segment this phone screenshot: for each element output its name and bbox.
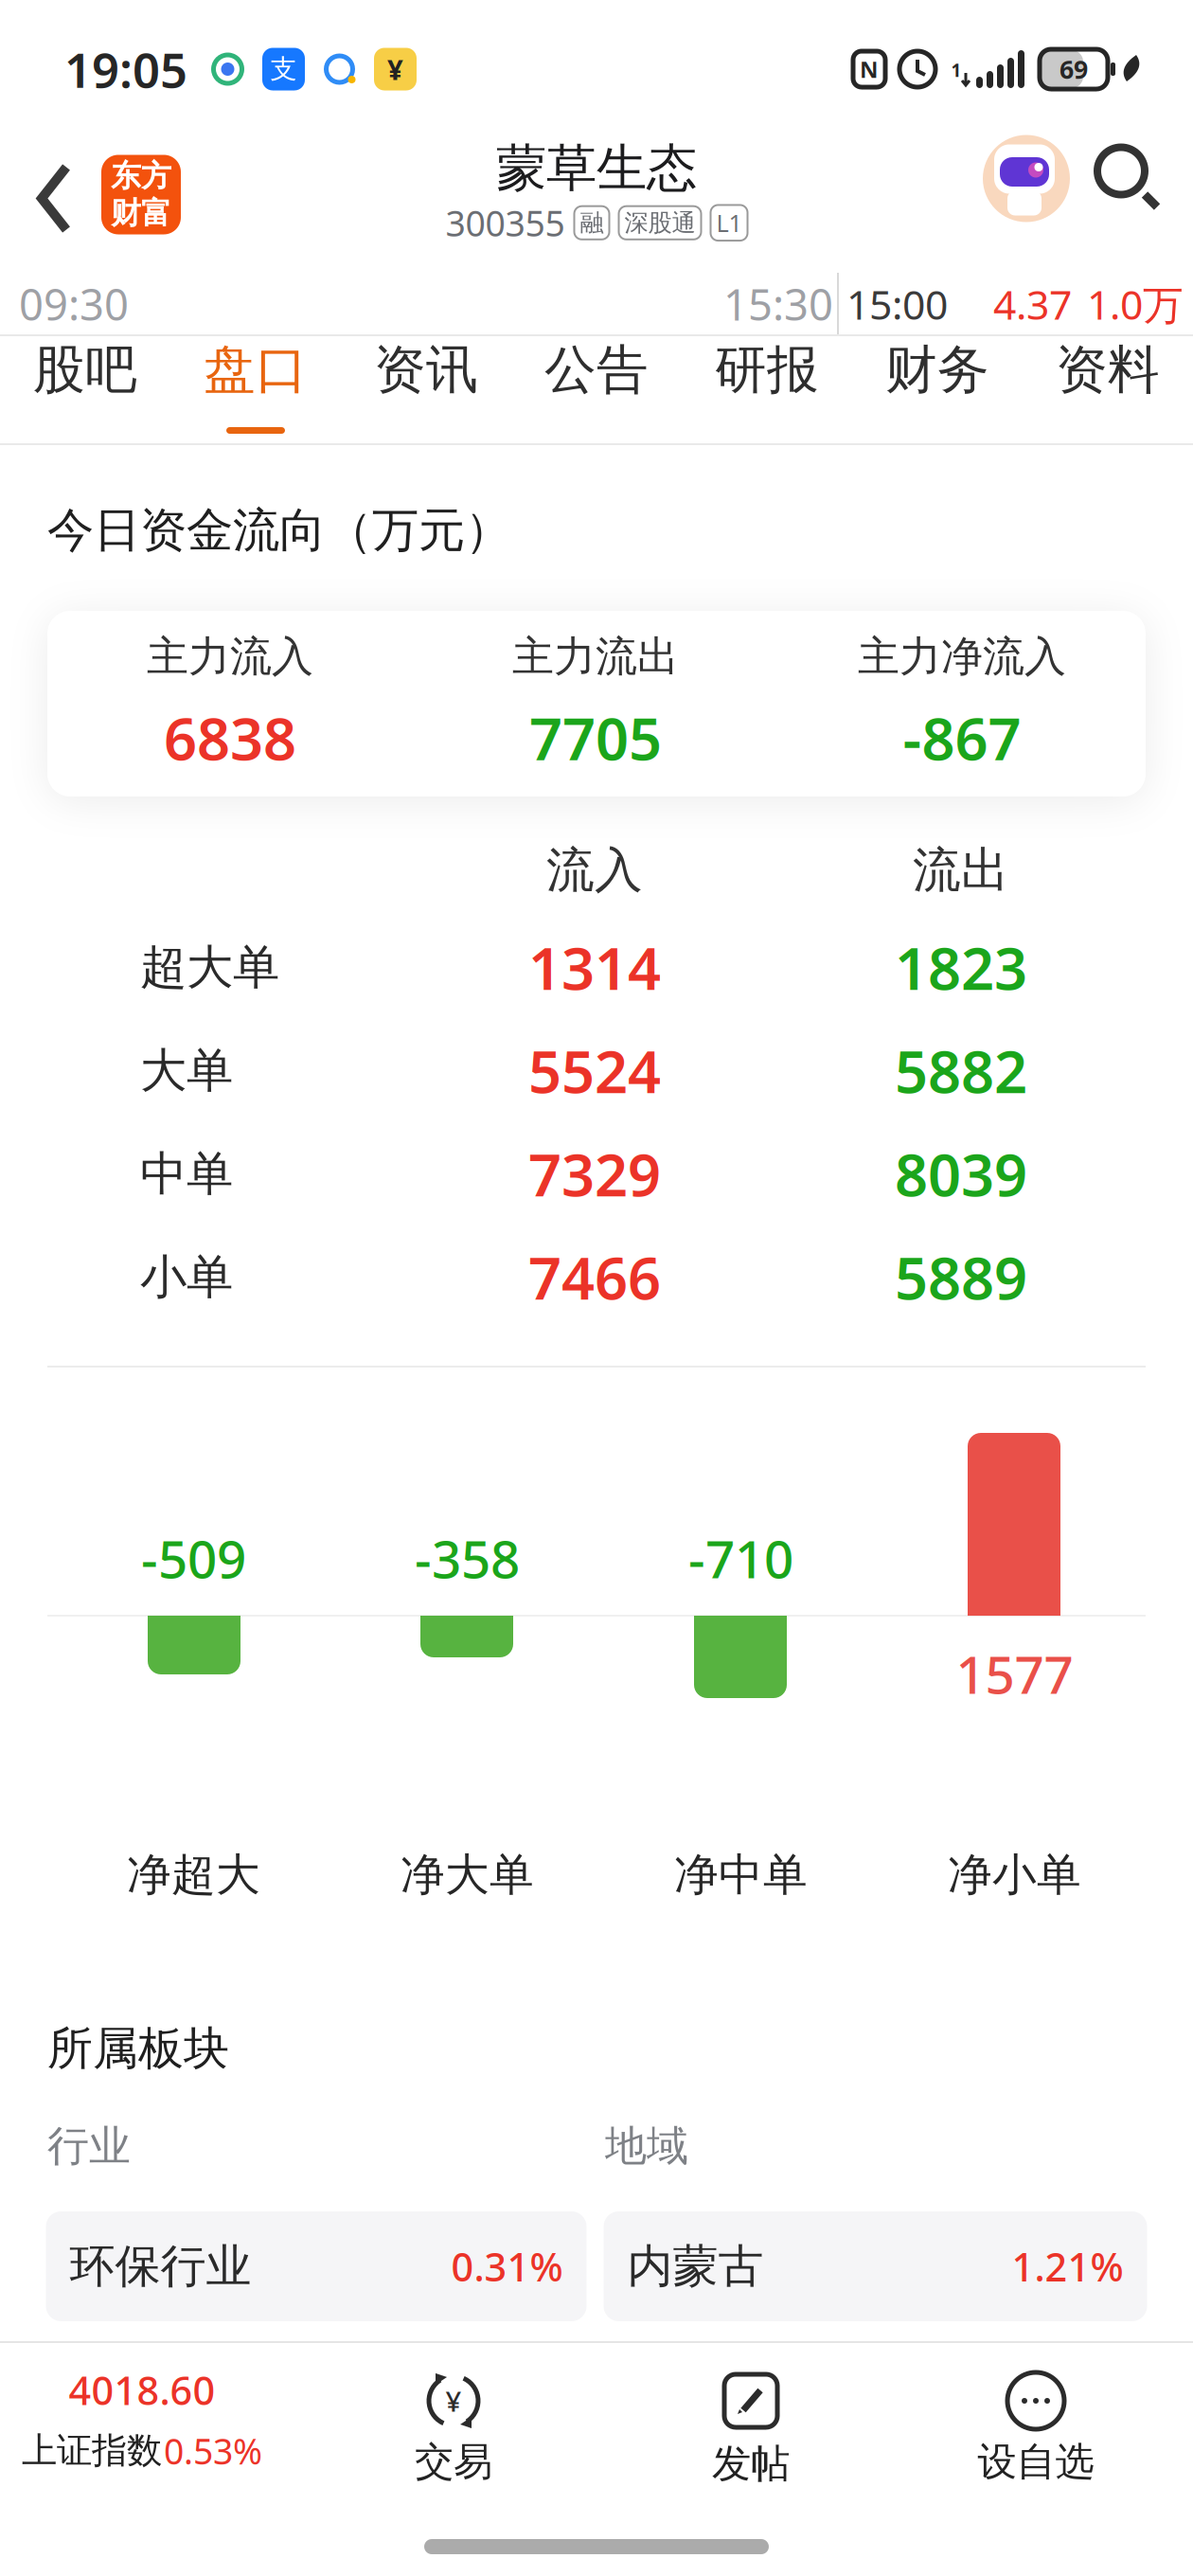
- button[interactable]: [1096, 146, 1159, 209]
- button[interactable]: 资料: [1023, 336, 1193, 443]
- staticText: 0.53%: [164, 2427, 262, 2474]
- staticText: 净超大: [127, 1848, 260, 1902]
- staticText: 支: [270, 53, 297, 85]
- staticText: 行业: [47, 2120, 131, 2172]
- staticText: 流出: [913, 841, 1009, 900]
- staticText: L1: [716, 207, 742, 239]
- staticText: 财富: [111, 195, 171, 232]
- button[interactable]: [983, 135, 1070, 222]
- staticText: 5524: [528, 1032, 661, 1109]
- button[interactable]: 环保行业: [46, 2211, 587, 2321]
- staticText: 所属板块: [47, 2021, 229, 2076]
- staticText: 主力净流入: [858, 631, 1066, 682]
- staticText: 蒙草生态: [496, 137, 697, 199]
- staticText: 15:00: [846, 277, 948, 331]
- staticText: 主力流入: [147, 631, 313, 682]
- staticText: 中单: [140, 1145, 233, 1203]
- staticText: 深股通: [624, 208, 695, 238]
- staticText: 4018.60: [69, 2364, 215, 2416]
- button[interactable]: 股吧: [0, 336, 170, 443]
- staticText: 资讯: [374, 338, 478, 402]
- staticText: 1823: [895, 929, 1027, 1006]
- button[interactable]: 发帖: [623, 2343, 879, 2488]
- staticText: 1314: [528, 929, 661, 1006]
- button[interactable]: 资讯: [341, 336, 511, 443]
- staticText: 大单: [140, 1042, 233, 1099]
- staticText: -509: [141, 1524, 246, 1593]
- button[interactable]: 公告: [511, 336, 682, 443]
- staticText: 300355: [445, 199, 565, 246]
- staticText: 发帖: [712, 2440, 790, 2488]
- button[interactable]: 盘口: [170, 336, 341, 443]
- staticText: 超大单: [140, 939, 279, 996]
- staticText: 5882: [895, 1032, 1027, 1109]
- staticText: 8039: [895, 1135, 1027, 1212]
- staticText: 7466: [528, 1239, 661, 1316]
- staticText: -867: [903, 699, 1021, 776]
- staticText: 主力流出: [512, 631, 679, 682]
- staticText: N: [860, 54, 879, 84]
- staticText: 今日资金流向（万元）: [47, 502, 511, 559]
- staticText: 财务: [885, 338, 989, 402]
- staticText: 1.0万: [1087, 277, 1184, 331]
- staticText: 1: [951, 58, 962, 82]
- staticText: 交易: [415, 2438, 492, 2486]
- staticText: 小单: [140, 1248, 233, 1306]
- staticText: 5889: [895, 1239, 1027, 1316]
- button[interactable]: 设自选: [879, 2343, 1193, 2486]
- staticText: -710: [688, 1524, 793, 1593]
- button[interactable]: 4018.60: [0, 2343, 284, 2474]
- button[interactable]: ¥: [284, 2343, 623, 2486]
- staticText: 0.31%: [451, 2240, 563, 2292]
- staticText: ¥: [387, 51, 403, 88]
- staticText: 东方: [111, 157, 171, 195]
- staticText: 设自选: [978, 2438, 1094, 2486]
- staticText: 09:30: [19, 275, 129, 333]
- staticText: 7329: [528, 1135, 661, 1212]
- staticText: 7705: [529, 699, 662, 776]
- staticText: 1577: [956, 1639, 1073, 1708]
- staticText: 净小单: [948, 1848, 1081, 1902]
- staticText: 研报: [715, 338, 819, 402]
- button[interactable]: 研报: [682, 336, 852, 443]
- staticText: 19:05: [64, 37, 187, 101]
- staticText: ¥: [445, 2382, 462, 2419]
- staticText: 公告: [544, 338, 649, 402]
- button[interactable]: 财务: [852, 336, 1023, 443]
- staticText: 环保行业: [70, 2238, 251, 2294]
- staticText: -358: [415, 1524, 520, 1593]
- staticText: 净中单: [674, 1848, 808, 1902]
- staticText: 流入: [546, 841, 643, 900]
- button[interactable]: 东方: [101, 155, 181, 234]
- staticText: 6838: [164, 699, 296, 776]
- button[interactable]: [38, 164, 72, 233]
- staticText: 融: [580, 208, 604, 238]
- staticText: 资料: [1056, 338, 1160, 402]
- staticText: 净大单: [401, 1848, 534, 1902]
- staticText: 15:30: [723, 275, 833, 333]
- staticText: 69: [1059, 52, 1088, 86]
- staticText: 1.21%: [1012, 2240, 1123, 2292]
- staticText: 地域: [605, 2120, 688, 2172]
- staticText: 内蒙古: [627, 2238, 764, 2294]
- staticText: 4.37: [993, 277, 1072, 331]
- staticText: 上证指数: [22, 2429, 162, 2472]
- button[interactable]: 内蒙古: [604, 2211, 1147, 2321]
- staticText: 盘口: [204, 338, 308, 402]
- staticText: 股吧: [33, 338, 137, 402]
